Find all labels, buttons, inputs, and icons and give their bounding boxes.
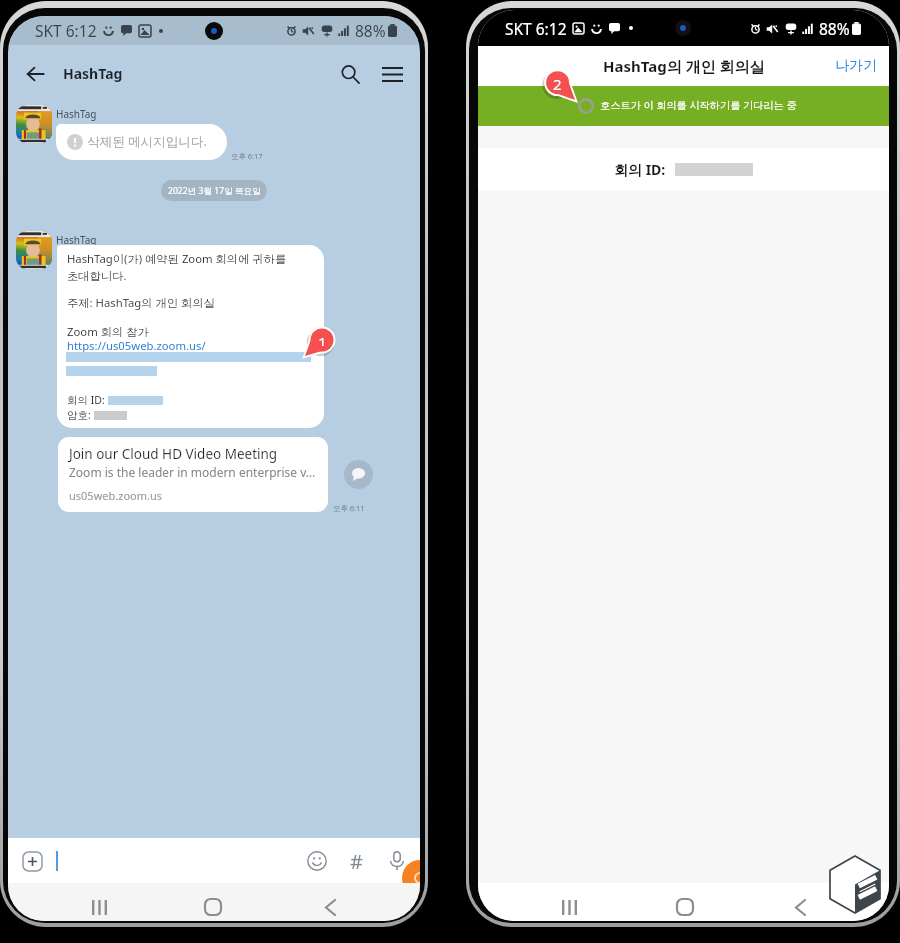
staticText: 1 xyxy=(318,332,327,346)
button[interactable]: Menu xyxy=(370,52,414,96)
staticText: 2022년 3월 17일 목요일 xyxy=(168,185,261,197)
staticText: Zoom 회의 참가 xyxy=(67,324,149,339)
button[interactable]: Hashtag xyxy=(341,846,371,876)
button[interactable]: Reply xyxy=(344,460,373,489)
staticText: 오후 6:11 xyxy=(333,503,365,513)
button[interactable]: Home xyxy=(196,890,230,921)
staticText: SKT 6:12 xyxy=(505,18,567,39)
staticText: HashTag xyxy=(56,107,97,121)
staticText: 회의 ID: xyxy=(614,160,666,179)
button[interactable]: Voice message xyxy=(382,846,412,876)
staticText: 주제: HashTag의 개인 회의실 xyxy=(67,295,215,310)
staticText: https://us05web.zoom.us/ xyxy=(67,338,206,353)
button[interactable]: Back xyxy=(13,52,57,96)
button[interactable]: Add attachment xyxy=(17,846,47,876)
button[interactable]: Recent apps xyxy=(82,890,116,921)
staticText: HashTag xyxy=(56,233,97,247)
button[interactable]: Back xyxy=(313,890,347,921)
staticText: Zoom is the leader in modern enterprise … xyxy=(69,464,316,480)
button[interactable]: Back xyxy=(783,890,817,921)
button[interactable]: Profile picture xyxy=(16,105,52,143)
button[interactable]: Home xyxy=(668,890,702,921)
staticText: SKT 6:12 xyxy=(35,20,97,41)
staticText: 암호: xyxy=(67,408,91,422)
staticText: 2 xyxy=(553,74,562,91)
staticText: HashTag이(가) 예약된 Zoom 회의에 귀하를 초대합니다. xyxy=(67,251,287,283)
button[interactable]: Emoji xyxy=(302,846,332,876)
staticText: 호스트가 이 회의를 시작하기를 기다리는 중 xyxy=(600,98,797,112)
button[interactable]: Camera xyxy=(402,860,420,896)
button[interactable]: 나가기 xyxy=(823,49,889,83)
staticText: HashTag의 개인 회의실 xyxy=(603,56,765,76)
staticText: 오후 6:17 xyxy=(231,151,263,161)
staticText: # xyxy=(350,848,363,875)
staticText: Join our Cloud HD Video Meeting xyxy=(69,445,278,463)
button[interactable]: Profile picture xyxy=(16,231,52,269)
staticText: HashTag xyxy=(63,64,123,83)
button[interactable]: Recent apps xyxy=(552,890,586,921)
staticText: us05web.zoom.us xyxy=(69,488,162,503)
staticText: 88% xyxy=(355,20,386,41)
staticText: 회의 ID: xyxy=(67,393,105,407)
staticText: 88% xyxy=(819,18,850,39)
button[interactable]: Search xyxy=(328,52,372,96)
staticText: 삭제된 메시지입니다. xyxy=(87,133,207,150)
staticText: 나가기 xyxy=(835,57,877,75)
